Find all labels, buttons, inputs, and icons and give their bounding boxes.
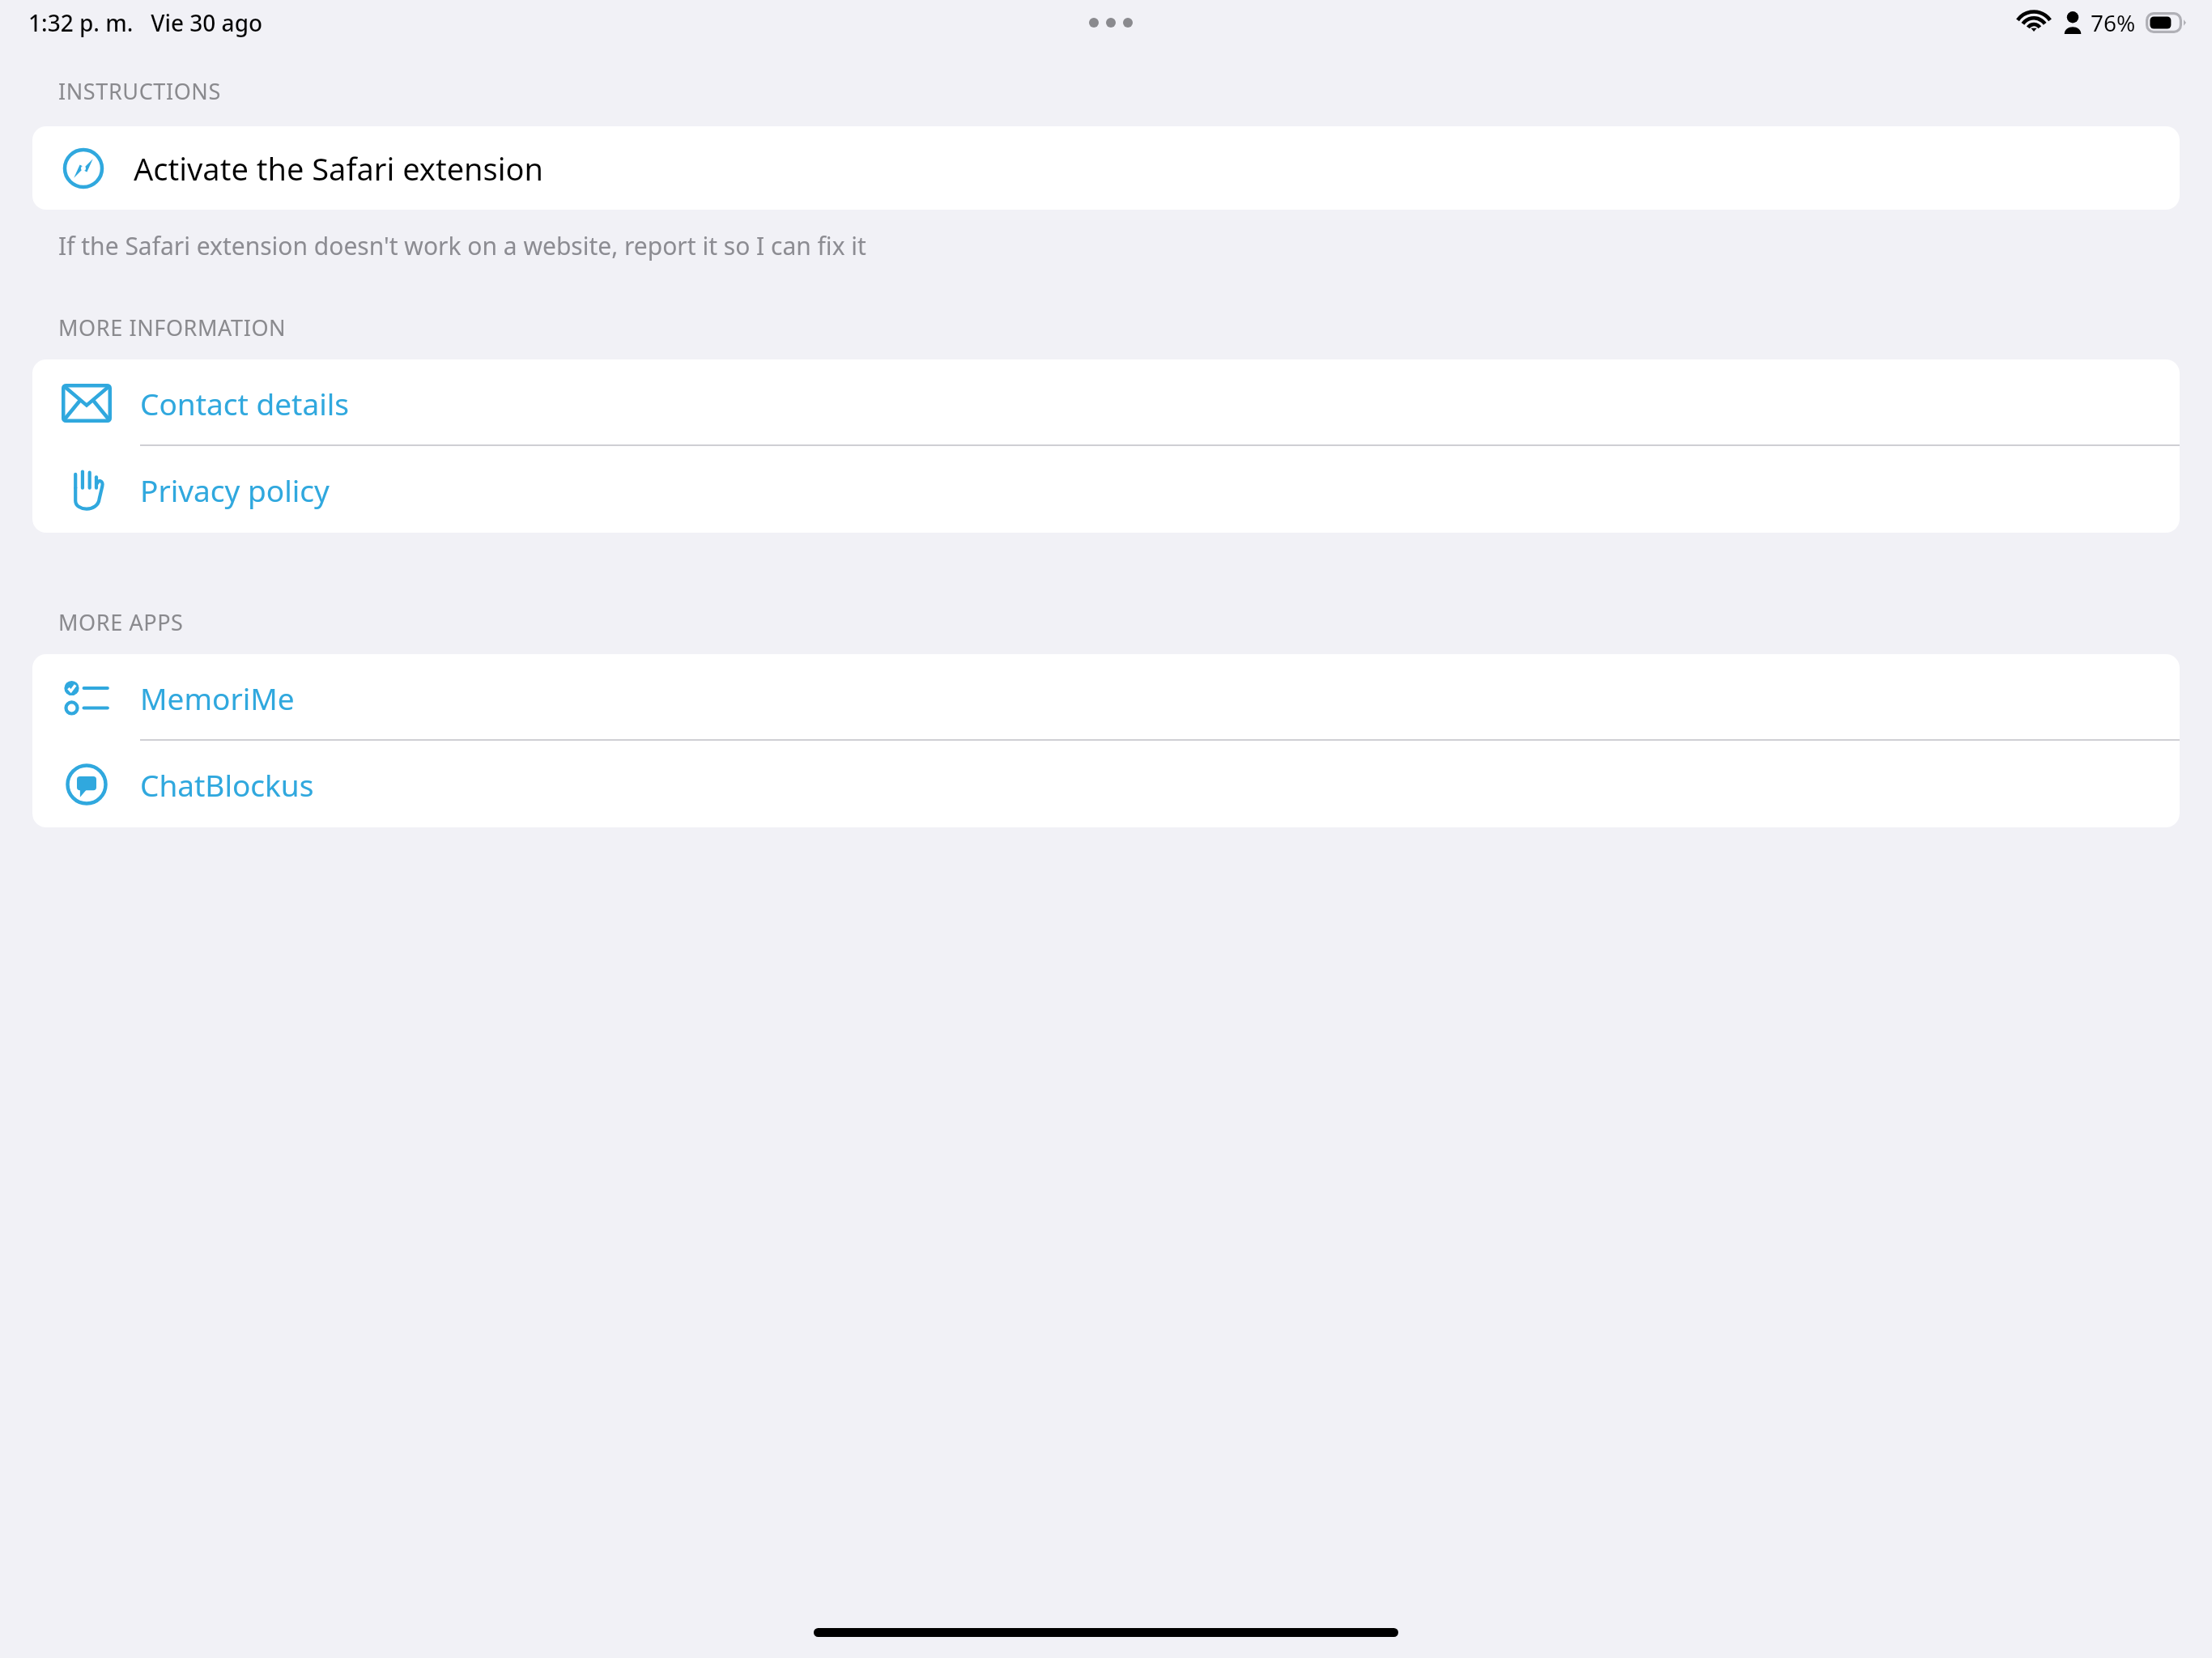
- staticText: 1:32 p. m. Vie 30 ago: [28, 7, 263, 38]
- staticText: Activate the Safari extension: [134, 147, 544, 189]
- button[interactable]: Privacy policy: [32, 446, 2180, 533]
- staticText: MemoriMe: [140, 678, 295, 718]
- staticText: ChatBlockus: [140, 764, 314, 805]
- button[interactable]: MemoriMe: [32, 654, 2180, 741]
- staticText: Privacy policy: [140, 470, 330, 510]
- staticText: 76%: [2091, 7, 2136, 38]
- button[interactable]: Contact details: [32, 359, 2180, 446]
- button[interactable]: ChatBlockus: [32, 741, 2180, 827]
- staticText: If the Safari extension doesn't work on …: [58, 229, 866, 262]
- button[interactable]: Activate the Safari extension: [32, 126, 2180, 210]
- staticText: MORE APPS: [58, 607, 184, 637]
- staticText: INSTRUCTIONS: [58, 76, 221, 106]
- staticText: MORE INFORMATION: [58, 312, 287, 342]
- staticText: Contact details: [140, 383, 350, 423]
